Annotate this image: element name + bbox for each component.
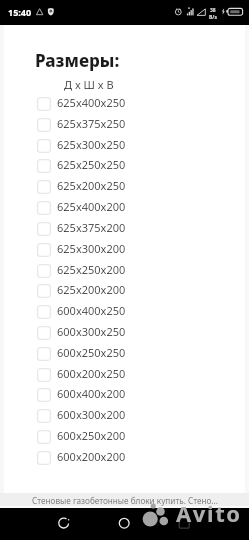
- staticText: Размеры:: [35, 49, 120, 72]
- staticText: 625x250x250: [57, 157, 126, 172]
- staticText: 625x300x200: [57, 241, 126, 256]
- staticText: 15:40: [8, 6, 32, 18]
- button[interactable]: 600x200x250: [0, 365, 249, 382]
- button[interactable]: 625x300x250: [0, 136, 249, 153]
- button[interactable]: 625x250x200: [0, 261, 249, 278]
- staticText: 600x300x250: [57, 324, 126, 339]
- staticText: 600x400x200: [57, 386, 126, 401]
- button[interactable]: 600x300x250: [0, 323, 249, 340]
- button[interactable]: 625x375x250: [0, 115, 249, 132]
- button[interactable]: 625x200x200: [0, 281, 249, 298]
- staticText: B/s: [209, 14, 217, 21]
- staticText: 625x400x250: [57, 95, 126, 110]
- button[interactable]: Home: [112, 511, 136, 535]
- staticText: 625x375x200: [57, 220, 126, 235]
- staticText: 600x200x250: [57, 366, 126, 381]
- button[interactable]: 600x300x200: [0, 406, 249, 423]
- button[interactable]: Стеновые газобетонные блоки купить. Стен…: [0, 493, 249, 508]
- button[interactable]: 625x200x250: [0, 177, 249, 194]
- button[interactable]: 600x200x200: [0, 448, 249, 465]
- button[interactable]: 600x400x200: [0, 385, 249, 402]
- button[interactable]: 625x400x250: [0, 94, 249, 111]
- staticText: Д x Ш x В: [64, 77, 114, 92]
- staticText: 625x250x200: [57, 262, 126, 277]
- button[interactable]: 600x400x250: [0, 302, 249, 319]
- staticText: 600x300x200: [57, 407, 126, 422]
- button[interactable]: 625x375x200: [0, 219, 249, 236]
- button[interactable]: 625x400x200: [0, 198, 249, 215]
- staticText: 625x200x250: [57, 178, 126, 193]
- staticText: 625x375x250: [57, 116, 126, 131]
- staticText: 600x200x200: [57, 449, 126, 464]
- button[interactable]: 600x250x250: [0, 344, 249, 361]
- button[interactable]: 625x300x200: [0, 240, 249, 257]
- staticText: 600x250x250: [57, 345, 126, 360]
- staticText: Avito: [176, 498, 242, 528]
- staticText: 625x200x200: [57, 282, 126, 297]
- staticText: Стеновые газобетонные блоки купить. Стен…: [32, 495, 218, 506]
- button[interactable]: 600x250x200: [0, 427, 249, 444]
- staticText: 625x400x200: [57, 199, 126, 214]
- staticText: 600x400x250: [57, 303, 126, 318]
- staticText: 38: [210, 7, 216, 14]
- staticText: 600x250x200: [57, 428, 126, 443]
- staticText: 625x300x250: [57, 137, 126, 152]
- button[interactable]: Recent apps: [172, 511, 196, 535]
- button[interactable]: Back: [52, 511, 76, 535]
- button[interactable]: 625x250x250: [0, 156, 249, 173]
